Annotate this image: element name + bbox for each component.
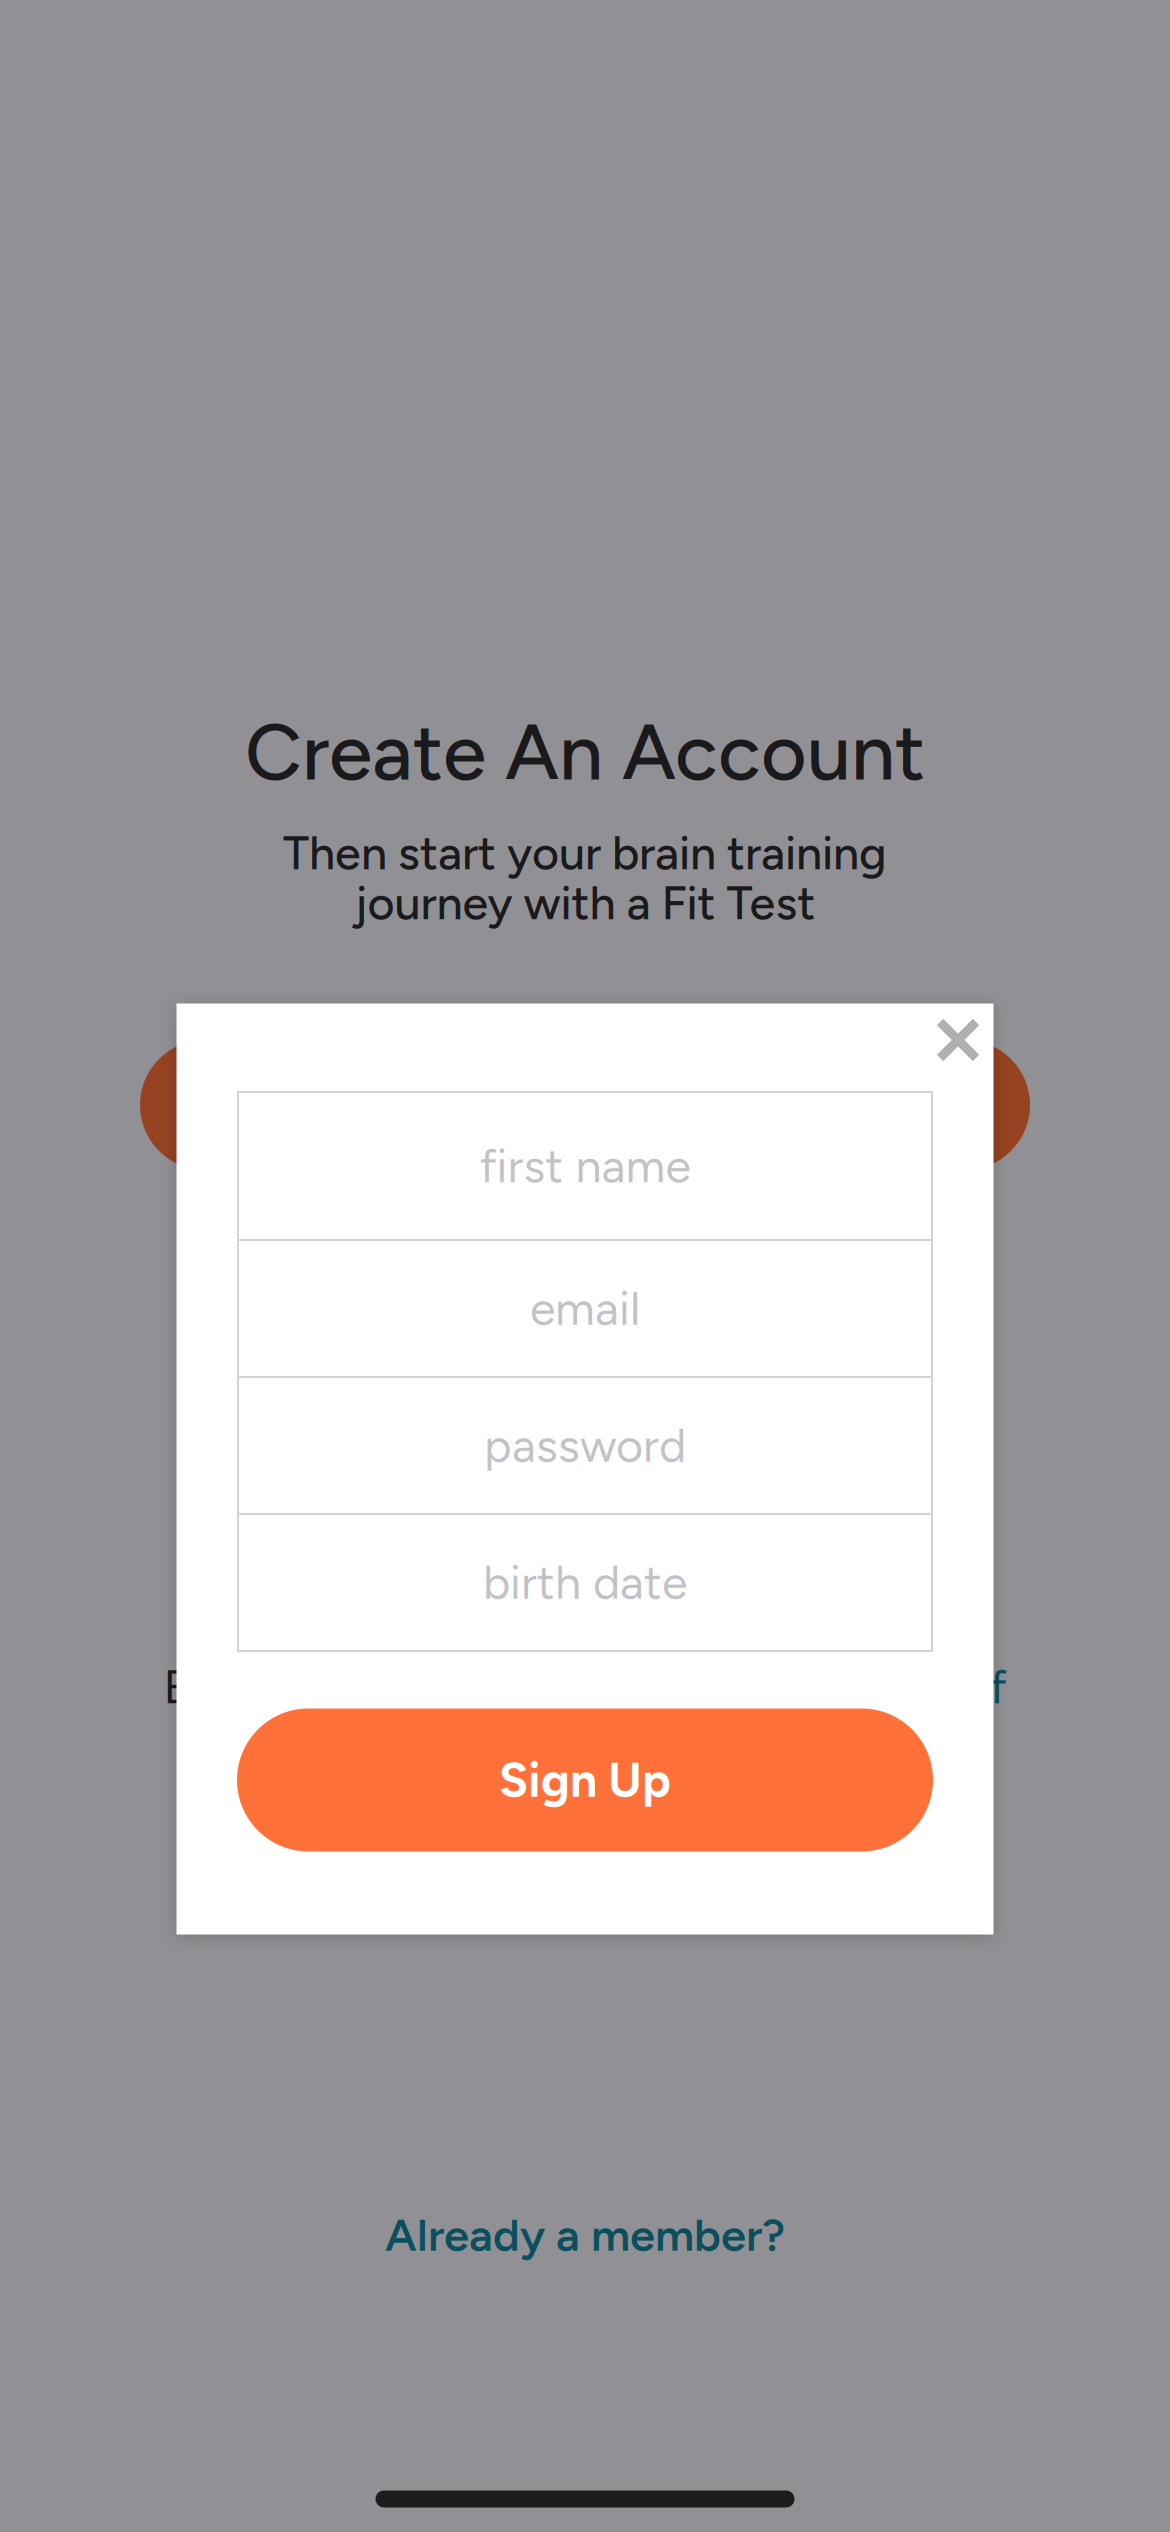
staticText: password bbox=[484, 1417, 686, 1473]
staticText: birth date bbox=[483, 1554, 687, 1610]
button[interactable]: Already a member? bbox=[325, 2187, 845, 2283]
staticText: Privacy Policy bbox=[568, 1709, 857, 1765]
staticText: and bbox=[467, 1709, 568, 1765]
staticText: By signing up, you agree to our bbox=[163, 1659, 824, 1715]
staticText: email bbox=[530, 1280, 640, 1336]
button[interactable]: Close bbox=[920, 1002, 996, 1078]
button[interactable]: email bbox=[238, 1240, 932, 1377]
staticText: Terms of bbox=[824, 1659, 1006, 1715]
staticText: first name bbox=[479, 1138, 690, 1194]
button[interactable]: birth date bbox=[238, 1514, 932, 1651]
button[interactable]: password bbox=[238, 1377, 932, 1514]
staticText: Create An Account bbox=[245, 705, 925, 799]
staticText: journey with a Fit Test bbox=[354, 875, 815, 931]
staticText: Sign Up bbox=[499, 1751, 671, 1809]
staticText: Already a member? bbox=[385, 2208, 785, 2262]
staticText: Then start your brain training bbox=[283, 825, 887, 881]
button[interactable]: Sign Up bbox=[237, 1708, 933, 1851]
button[interactable]: first name bbox=[238, 1092, 932, 1240]
